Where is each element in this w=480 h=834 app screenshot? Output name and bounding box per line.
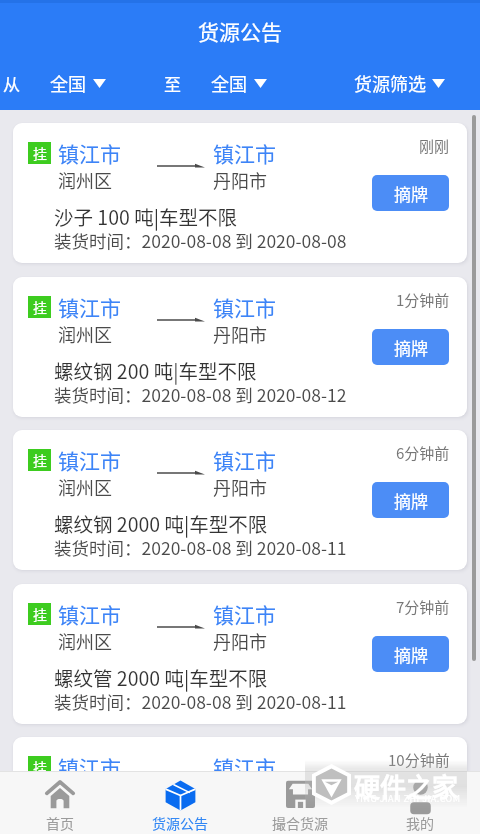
staticText: 全国 [50,70,86,96]
staticText: 螺纹钢 2000 吨|车型不限 [54,509,268,537]
staticText: 丹阳市 [213,321,267,347]
staticText: 挂 [33,604,47,624]
staticText: 货源公告 [198,16,282,46]
button[interactable]: 从 [3,70,106,96]
staticText: 镇江市 [213,138,276,168]
staticText: 挂 [33,450,47,470]
staticText: 镇江市 [213,445,276,475]
staticText: 货源公告 [152,813,208,833]
staticText: 装货时间：2020-08-08 到 2020-08-11 [54,535,347,560]
button[interactable]: 挂 [13,737,467,834]
staticText: 刚刚 [419,135,450,157]
staticText: YING JIAN ZHI JIA.COM [355,792,461,805]
staticText: 挂 [33,143,47,163]
staticText: 撮合货源 [272,813,328,833]
button[interactable]: 至 [164,70,267,96]
button[interactable]: 挂 [13,430,467,570]
staticText: 摘牌 [394,335,428,360]
staticText: 螺纹管 2000 吨|车型不限 [54,816,268,834]
staticText: 螺纹管 2000 吨|车型不限 [54,663,268,691]
button[interactable]: 挂 [13,123,467,263]
button[interactable]: 摘牌 [372,329,449,365]
staticText: 10分钟前 [388,749,450,771]
staticText: 镇江市 [58,599,121,629]
staticText: 摘牌 [394,642,428,667]
other: 撮合货源 [286,780,315,808]
staticText: 镇江市 [213,292,276,322]
staticText: 货源筛选 [354,70,426,96]
button[interactable]: 挂 [13,584,467,724]
other: 货源公告 [165,780,196,811]
staticText: 镇江市 [58,292,121,322]
staticText: 镇江市 [58,445,121,475]
staticText: 丹阳市 [213,628,267,654]
staticText: 镇江市 [58,138,121,168]
button[interactable]: 货源筛选 [354,70,445,96]
staticText: 润州区 [58,474,112,500]
button[interactable]: 首页 [0,772,120,834]
staticText: 润州区 [58,628,112,654]
other: 我的 [408,780,433,810]
staticText: 丹阳市 [213,167,267,193]
button[interactable]: 摘牌 [372,789,449,825]
staticText: 全国 [211,70,247,96]
staticText: 螺纹钢 200 吨|车型不限 [54,356,257,384]
staticText: 1分钟前 [396,289,450,311]
staticText: 装货时间：2020-08-08 到 2020-08-12 [54,382,347,407]
staticText: 7分钟前 [396,596,450,618]
staticText: 首页 [46,813,74,833]
staticText: 沙子 100 吨|车型不限 [54,202,237,230]
button[interactable]: 我的 [360,772,480,834]
staticText: 6分钟前 [396,442,450,464]
staticText: 丹阳市 [213,474,267,500]
other: 首页 [45,780,75,809]
button[interactable]: 撮合货源 [240,772,360,834]
staticText: 摘牌 [394,795,428,820]
button[interactable]: 摘牌 [372,482,449,518]
staticText: 装货时间：2020-08-08 到 2020-08-08 [54,228,347,253]
staticText: 镇江市 [213,599,276,629]
button[interactable]: 货源公告 [120,772,240,834]
staticText: 挂 [33,757,47,777]
staticText: 装货时间：2020-08-08 到 2020-08-11 [54,689,347,714]
staticText: 镇江市 [58,752,121,782]
staticText: 润州区 [58,321,112,347]
button[interactable]: 摘牌 [372,636,449,672]
staticText: 镇江市 [213,752,276,782]
staticText: 我的 [406,813,434,833]
staticText: 挂 [33,297,47,317]
staticText: 润州区 [58,781,112,807]
staticText: 从 [3,71,20,96]
staticText: 摘牌 [394,181,428,206]
staticText: 至 [164,71,181,96]
staticText: 摘牌 [394,488,428,513]
staticText: 硬件之家 [354,767,459,805]
staticText: 润州区 [58,167,112,193]
button[interactable]: 挂 [13,277,467,417]
button[interactable]: 摘牌 [372,175,449,211]
